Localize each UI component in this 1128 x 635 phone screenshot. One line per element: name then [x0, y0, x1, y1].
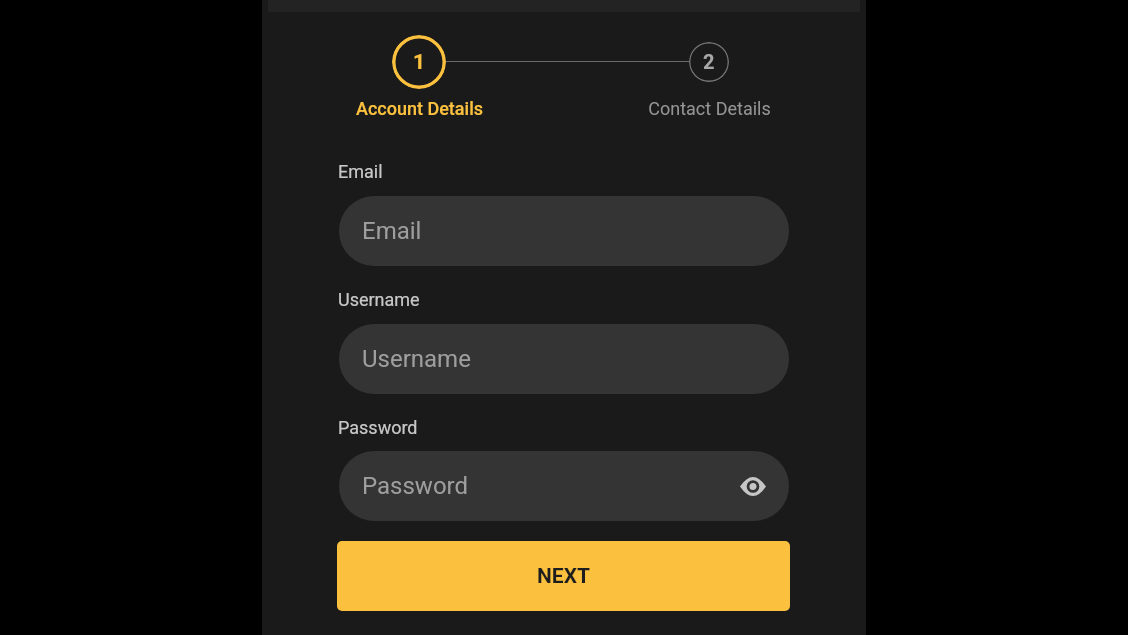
- button[interactable]: Contact Details: [609, 94, 809, 122]
- staticText: 1: [413, 50, 426, 75]
- staticText: 2: [703, 50, 715, 73]
- button[interactable]: Username: [339, 324, 789, 394]
- staticText: NEXT: [537, 564, 590, 589]
- button[interactable]: Account Details: [317, 94, 521, 122]
- staticText: Account Details: [356, 98, 483, 119]
- button[interactable]: Password: [339, 451, 789, 521]
- staticText: Contact Details: [648, 98, 771, 119]
- staticText: Email: [362, 217, 422, 245]
- button[interactable]: Email: [339, 196, 789, 266]
- staticText: Username: [338, 289, 420, 310]
- staticText: Email: [338, 161, 383, 182]
- staticText: Password: [362, 472, 469, 500]
- button[interactable]: Show password: [735, 468, 771, 504]
- staticText: Password: [338, 417, 418, 438]
- button[interactable]: Step 2: [689, 42, 729, 82]
- button[interactable]: NEXT: [337, 541, 790, 611]
- staticText: Username: [362, 345, 471, 373]
- button[interactable]: Step 1: [392, 35, 446, 89]
